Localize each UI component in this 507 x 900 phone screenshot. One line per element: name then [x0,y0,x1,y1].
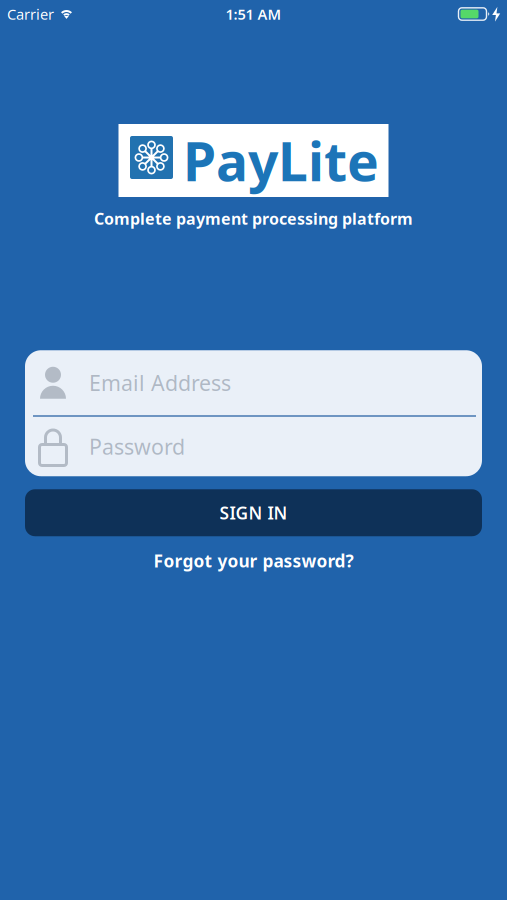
button[interactable]: Email Address [25,350,482,415]
button[interactable]: Password [25,417,482,476]
staticText: Password [89,432,185,461]
staticText: SIGN IN [219,501,287,524]
staticText: 1:51 AM [225,4,281,24]
staticText: Email Address [89,369,231,397]
button[interactable]: Forgot your password? [153,549,353,572]
staticText: Carrier [7,4,54,24]
button[interactable]: SIGN IN [25,489,482,536]
staticText: Forgot your password? [153,549,353,572]
staticText: PayLite [183,125,379,196]
staticText: Complete payment processing platform [94,208,413,229]
